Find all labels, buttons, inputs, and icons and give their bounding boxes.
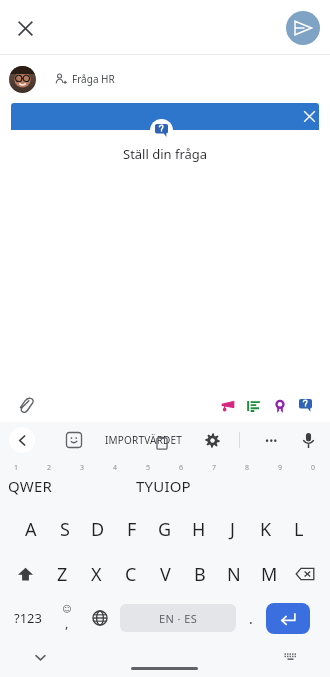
button[interactable]: Attach — [12, 392, 39, 419]
staticText: 7 — [212, 463, 217, 473]
staticText: Fråga HR — [72, 72, 115, 86]
staticText: H — [192, 517, 206, 542]
staticText: X — [91, 562, 102, 587]
staticText: 5 — [146, 463, 151, 473]
button[interactable] — [99, 458, 132, 506]
button[interactable]: N — [219, 552, 249, 596]
staticText: ••• — [265, 433, 278, 448]
staticText: Z — [57, 562, 68, 587]
staticText: IMPORTVÄRDET — [105, 433, 183, 447]
button[interactable]: Fråga HR — [48, 67, 122, 91]
button[interactable]: D — [83, 506, 113, 552]
staticText: 0 — [311, 463, 316, 473]
other: Enter — [279, 610, 297, 628]
staticText: V — [160, 562, 171, 587]
button[interactable]: K — [251, 506, 281, 552]
button[interactable]: A — [16, 506, 46, 552]
button[interactable]: Z — [47, 552, 77, 596]
other: Sticker — [66, 432, 82, 448]
button[interactable]: Sticker — [61, 427, 87, 453]
button[interactable]: Ask a question — [293, 393, 318, 418]
other: Hide keyboard — [33, 650, 48, 665]
button[interactable]: B — [185, 552, 215, 596]
button[interactable]: F — [117, 506, 147, 552]
button[interactable] — [264, 458, 297, 506]
staticText: C — [125, 562, 137, 587]
button[interactable] — [132, 458, 165, 506]
button[interactable]: G — [150, 506, 180, 552]
other: Change language — [92, 610, 108, 626]
staticText: D — [91, 517, 105, 542]
other: Settings — [205, 433, 220, 448]
staticText: 1 — [14, 463, 19, 473]
button[interactable]: M — [254, 552, 284, 596]
button[interactable]: Enter — [266, 603, 310, 634]
staticText: 8 — [245, 463, 250, 473]
other: Back — [15, 433, 30, 448]
other: Attach — [17, 397, 34, 414]
button[interactable] — [165, 458, 198, 506]
button[interactable]: Recognition — [267, 393, 292, 418]
staticText: 4 — [113, 463, 118, 473]
button[interactable]: More options — [258, 427, 284, 453]
button[interactable]: S — [50, 506, 80, 552]
staticText: EN · ES — [159, 611, 198, 626]
staticText: . — [249, 609, 253, 628]
staticText: G — [158, 517, 172, 542]
staticText: J — [230, 517, 235, 542]
button[interactable]: Close — [4, 7, 46, 49]
button[interactable]: C — [116, 552, 146, 596]
button[interactable] — [297, 458, 330, 506]
button[interactable]: ?123 — [6, 596, 50, 640]
staticText: 3 — [80, 463, 85, 473]
button[interactable] — [198, 458, 231, 506]
staticText: K — [260, 517, 272, 542]
button[interactable] — [66, 458, 99, 506]
other: Profile photo — [9, 66, 36, 93]
staticText: N — [227, 562, 241, 587]
button[interactable]: Shift — [8, 552, 42, 596]
staticText: B — [194, 562, 206, 587]
button[interactable]: Announcement — [215, 393, 240, 418]
button[interactable] — [0, 458, 33, 506]
staticText: Ställ din fråga — [123, 145, 208, 163]
button[interactable] — [231, 458, 264, 506]
staticText: A — [25, 517, 37, 542]
button[interactable]: EN · ES — [120, 604, 236, 632]
staticText: M — [261, 562, 278, 587]
button[interactable]: ☺ — [50, 596, 84, 640]
other: Send — [293, 18, 313, 38]
other: Voice input — [300, 432, 317, 449]
staticText: ☺ — [62, 604, 72, 614]
staticText: S — [60, 517, 70, 542]
staticText: ?123 — [14, 609, 42, 627]
staticText: , — [65, 614, 69, 632]
staticText: TYUIOP — [136, 476, 191, 496]
button[interactable]: Change language — [84, 596, 116, 640]
staticText: 6 — [179, 463, 184, 473]
button[interactable]: Back — [9, 427, 35, 453]
staticText: L — [294, 517, 304, 542]
button[interactable]: Send — [286, 11, 320, 45]
button[interactable]: Voice input — [295, 427, 321, 453]
button[interactable]: Task list — [241, 393, 266, 418]
button[interactable]: Switch keyboard — [278, 645, 302, 669]
staticText: 9 — [278, 463, 283, 473]
button[interactable]: L — [284, 506, 314, 552]
other: Switch keyboard — [283, 650, 298, 665]
staticText: F — [127, 517, 137, 542]
button[interactable]: X — [81, 552, 111, 596]
button[interactable]: Hide keyboard — [28, 645, 52, 669]
button[interactable]: J — [217, 506, 247, 552]
staticText: 2 — [47, 463, 52, 473]
button[interactable]: . — [236, 596, 266, 640]
other: Shift — [17, 566, 34, 583]
button[interactable]: Settings — [199, 427, 225, 453]
button[interactable]: Backspace — [288, 552, 322, 596]
other: Backspace — [295, 564, 315, 584]
button[interactable] — [33, 458, 66, 506]
button[interactable]: V — [150, 552, 180, 596]
button[interactable]: Dismiss card — [299, 106, 319, 126]
staticText: QWER — [8, 476, 52, 496]
button[interactable]: H — [184, 506, 214, 552]
